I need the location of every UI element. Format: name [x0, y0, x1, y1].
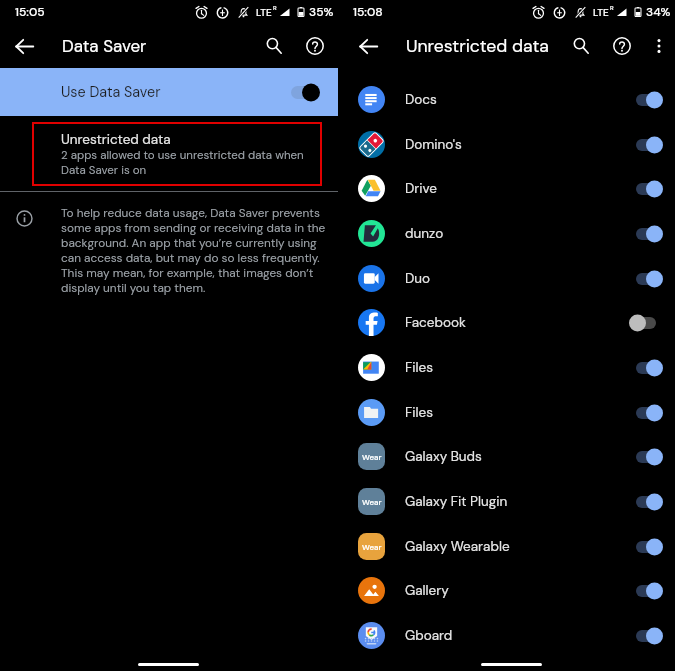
button[interactable]: Duo [338, 256, 675, 301]
staticText: Drive [405, 180, 437, 198]
staticText: R [273, 4, 277, 12]
staticText: Domino's [405, 136, 462, 154]
staticText: LTE [256, 6, 272, 19]
staticText: Galaxy Buds [405, 448, 482, 466]
staticText: LTE [593, 6, 609, 19]
button[interactable]: Docs [338, 77, 675, 122]
staticText: Use Data Saver [61, 83, 161, 102]
button[interactable]: Wear [338, 524, 675, 569]
staticText: Duo [405, 270, 431, 288]
staticText: Files [405, 359, 433, 377]
staticText: Files [405, 404, 433, 422]
button[interactable]: Files [338, 390, 675, 435]
button[interactable]: Facebook [338, 300, 675, 345]
staticText: Gboard [405, 627, 453, 645]
staticText: 34% [646, 4, 671, 20]
button[interactable]: More options [643, 30, 675, 62]
staticText: R [610, 4, 614, 12]
staticText: 35% [309, 4, 334, 20]
staticText: Unrestricted data [406, 35, 549, 58]
staticText: Unrestricted data [61, 131, 171, 149]
staticText: dunzo [405, 225, 444, 243]
button[interactable]: dunzo [338, 211, 675, 256]
button[interactable]: Help [601, 25, 643, 67]
button[interactable]: Unrestricted data [32, 122, 322, 186]
button[interactable]: Help [294, 25, 336, 67]
button[interactable]: Back [4, 26, 44, 66]
staticText: To help reduce data usage, Data Saver pr… [61, 205, 327, 295]
button[interactable]: Drive [338, 166, 675, 211]
staticText: Galaxy Fit Plugin [405, 493, 508, 511]
staticText: Data Saver [62, 35, 147, 57]
button[interactable]: Wear [338, 434, 675, 479]
button[interactable]: Domino's [338, 122, 675, 167]
button[interactable]: Back [348, 26, 388, 66]
staticText: Wear [362, 542, 382, 552]
staticText: Wear [362, 497, 382, 507]
staticText: Wear [362, 452, 382, 462]
button[interactable]: Gallery [338, 568, 675, 613]
staticText: Gallery [405, 582, 449, 600]
staticText: Docs [405, 91, 437, 109]
staticText: Facebook [405, 314, 466, 332]
button[interactable]: Wear [338, 479, 675, 524]
button[interactable]: Use Data Saver [0, 68, 338, 116]
staticText: Galaxy Wearable [405, 538, 510, 556]
button[interactable]: Search [561, 26, 601, 66]
button[interactable]: Gboard [338, 613, 675, 658]
staticText: 15:08 [353, 4, 383, 20]
staticText: 2 apps allowed to use unrestricted data … [61, 148, 304, 178]
button[interactable]: Files [338, 345, 675, 390]
button[interactable]: Search [254, 26, 294, 66]
staticText: 15:05 [15, 4, 45, 20]
